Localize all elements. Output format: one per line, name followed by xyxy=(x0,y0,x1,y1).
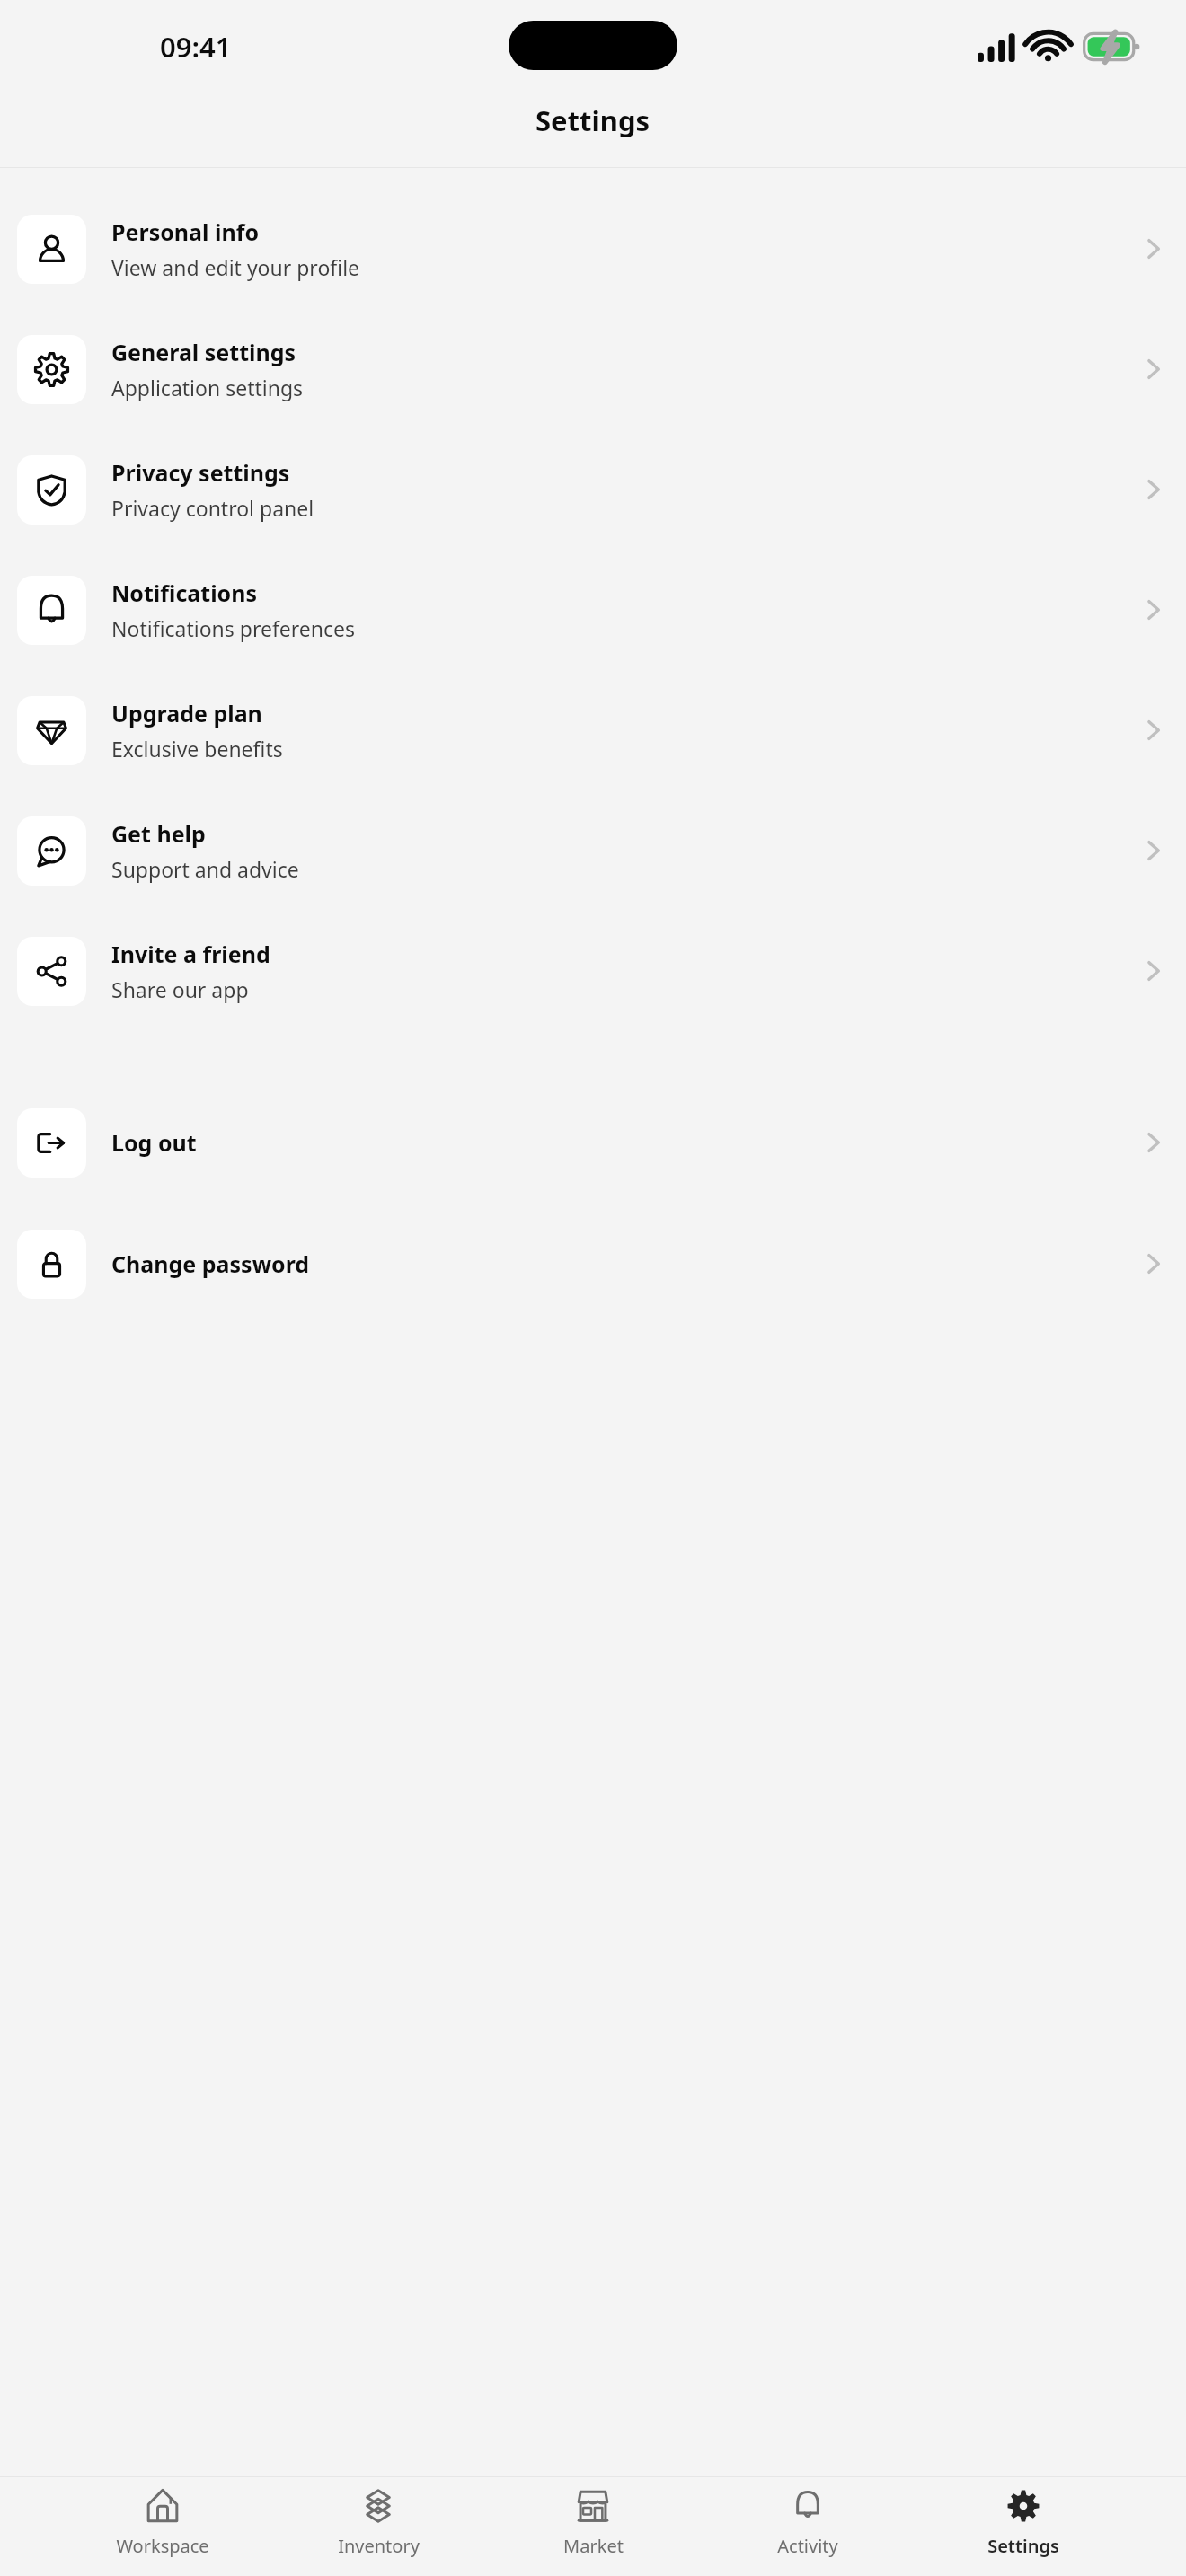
button[interactable]: Change password xyxy=(0,1204,1186,1324)
staticText: 09:41 xyxy=(160,28,232,66)
staticText: Inventory xyxy=(338,2534,420,2558)
staticText: View and edit your profile xyxy=(111,253,360,281)
staticText: Share our app xyxy=(111,975,249,1003)
staticText: Invite a friend xyxy=(111,939,270,969)
staticText: Upgrade plan xyxy=(111,698,262,728)
button[interactable]: Settings xyxy=(964,2483,1083,2558)
staticText: Support and advice xyxy=(111,855,299,883)
staticText: Settings xyxy=(535,101,651,139)
staticText: Activity xyxy=(777,2534,838,2558)
button[interactable]: Privacy settings xyxy=(0,429,1186,550)
button[interactable]: Upgrade plan xyxy=(0,670,1186,790)
button[interactable]: Invite a friend xyxy=(0,911,1186,1031)
button[interactable]: Workspace xyxy=(103,2483,222,2558)
button[interactable]: Log out xyxy=(0,1082,1186,1203)
button[interactable]: General settings xyxy=(0,309,1186,429)
button[interactable]: Get help xyxy=(0,790,1186,911)
staticText: Personal info xyxy=(111,216,260,247)
staticText: Market xyxy=(563,2534,624,2558)
staticText: Exclusive benefits xyxy=(111,735,283,763)
staticText: Settings xyxy=(987,2534,1059,2558)
button[interactable]: Market xyxy=(534,2483,652,2558)
staticText: Get help xyxy=(111,818,206,849)
button[interactable]: Personal info xyxy=(0,189,1186,309)
staticText: Notifications xyxy=(111,578,258,608)
staticText: Log out xyxy=(111,1127,197,1158)
staticText: Privacy settings xyxy=(111,457,290,488)
staticText: Workspace xyxy=(116,2534,209,2558)
staticText: Privacy control panel xyxy=(111,494,314,522)
staticText: General settings xyxy=(111,337,296,367)
button[interactable]: Inventory xyxy=(319,2483,438,2558)
staticText: Application settings xyxy=(111,374,304,401)
staticText: Notifications preferences xyxy=(111,614,356,642)
staticText: Change password xyxy=(111,1248,310,1279)
button[interactable]: Activity xyxy=(748,2483,867,2558)
button[interactable]: Notifications xyxy=(0,550,1186,670)
